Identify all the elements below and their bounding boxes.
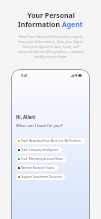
staticText: What can I track for you? (16, 123, 63, 128)
staticText: Information (18, 20, 62, 29)
staticText: Agent (62, 20, 83, 29)
button[interactable]: Track Company Intelligence (16, 147, 62, 153)
staticText: Your Personal (27, 11, 75, 20)
staticText: Track News And Price Alerts For My Portf… (21, 139, 82, 143)
button[interactable]: Monitor Research Topics (16, 165, 58, 171)
other: Signal, Wi-Fi and battery (71, 74, 82, 77)
staticText: Monitor Research Topics (21, 166, 55, 170)
staticText: 9:41 (21, 73, 28, 78)
staticText: Hi, Allen! (16, 114, 36, 120)
staticText: Support Investment Decisions (21, 175, 62, 179)
staticText: Track Marketing Account News (21, 157, 63, 161)
staticText: Track Company Intelligence (21, 148, 59, 152)
button[interactable]: Support Investment Decisions (16, 174, 65, 180)
button[interactable]: Track Marketing Account News (16, 156, 66, 162)
staticText: Meet Your Personal Information Agent Own… (12, 34, 89, 59)
button[interactable]: Track News And Price Alerts For My Portf… (16, 138, 85, 144)
